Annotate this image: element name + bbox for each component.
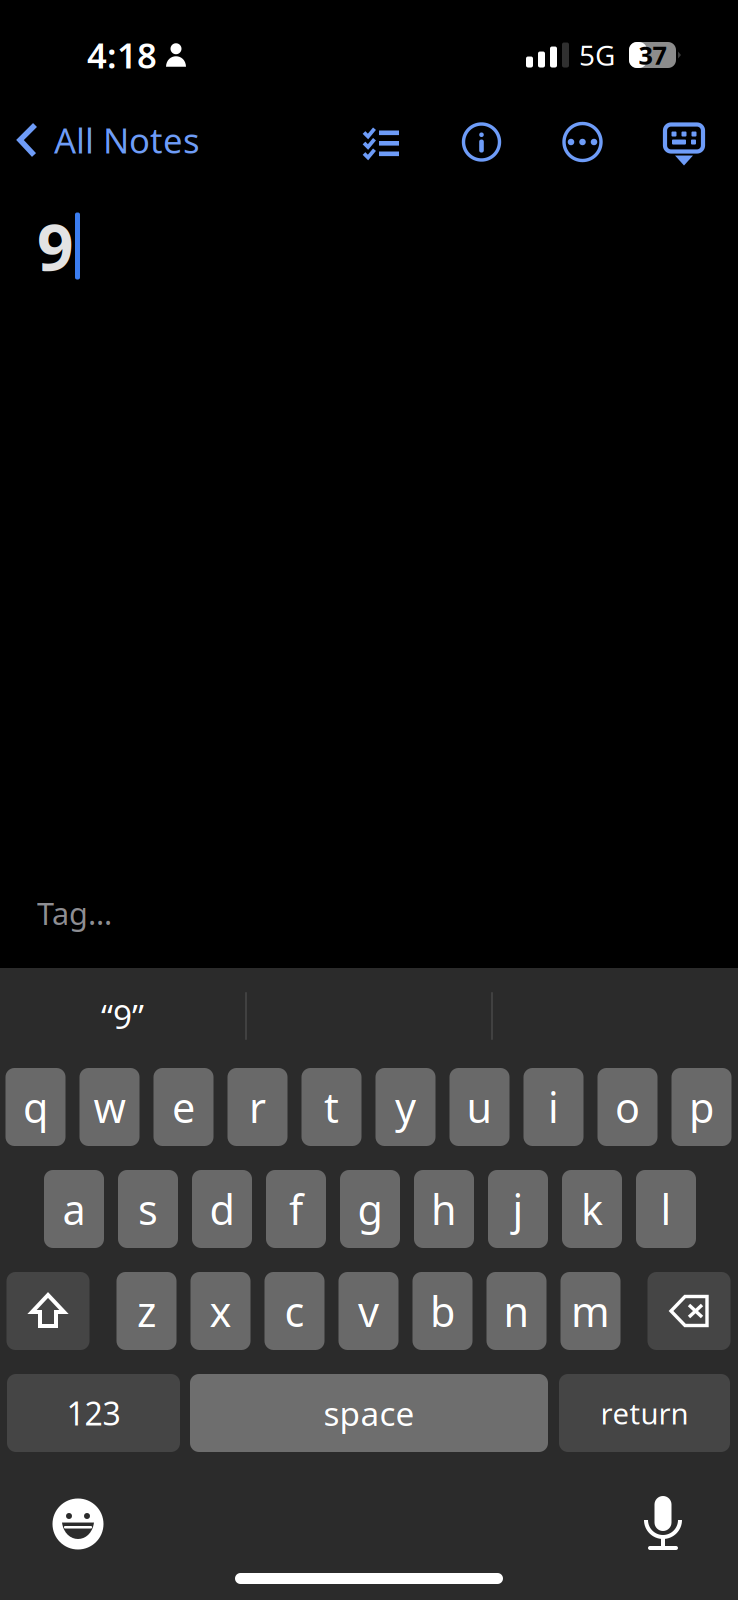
staticText: q [23, 1080, 48, 1134]
staticText: 5G [579, 36, 615, 74]
staticText: 37 [638, 38, 666, 72]
button[interactable]: a [44, 1170, 104, 1248]
staticText: space [323, 1391, 414, 1435]
button[interactable]: w [79, 1068, 139, 1146]
staticText: o [615, 1080, 640, 1134]
button[interactable]: r [227, 1068, 287, 1146]
staticText: e [172, 1080, 195, 1134]
button[interactable]: k [562, 1170, 622, 1248]
staticText: j [512, 1182, 523, 1236]
staticText: g [357, 1182, 382, 1236]
button[interactable]: u [449, 1068, 509, 1146]
button[interactable]: Delete [647, 1272, 730, 1350]
button[interactable]: o [597, 1068, 657, 1146]
button[interactable]: space [190, 1374, 548, 1452]
button[interactable]: v [338, 1272, 398, 1350]
button[interactable]: More Options [532, 111, 633, 173]
staticText: b [430, 1284, 455, 1338]
button[interactable]: return [559, 1374, 730, 1452]
staticText: d [209, 1182, 234, 1236]
staticText: a [62, 1182, 85, 1236]
staticText: i [548, 1080, 559, 1134]
staticText: n [503, 1284, 529, 1338]
button[interactable]: x [190, 1272, 250, 1350]
staticText: m [571, 1284, 610, 1338]
button[interactable]: Shift [6, 1272, 89, 1350]
button[interactable]: n [486, 1272, 546, 1350]
button[interactable]: y [375, 1068, 435, 1146]
staticText: u [466, 1080, 492, 1134]
staticText: y [395, 1080, 416, 1134]
button[interactable]: Hide Keyboard [633, 111, 735, 173]
staticText: return [600, 1393, 688, 1432]
button[interactable]: l [636, 1170, 696, 1248]
button[interactable]: m [560, 1272, 620, 1350]
staticText: h [431, 1182, 457, 1236]
staticText: “9” [101, 994, 144, 1038]
button[interactable]: g [340, 1170, 400, 1248]
staticText: Tag... [37, 893, 112, 933]
button[interactable]: “9” [0, 968, 246, 1052]
button[interactable]: e [153, 1068, 213, 1146]
button[interactable]: All Notes [0, 105, 210, 175]
button[interactable]: 123 [7, 1374, 180, 1452]
button[interactable]: p [671, 1068, 731, 1146]
staticText: 4:18 [87, 32, 157, 78]
staticText: l [660, 1182, 671, 1236]
staticText: f [289, 1182, 303, 1236]
button[interactable]: i [523, 1068, 583, 1146]
button[interactable]: j [488, 1170, 548, 1248]
button[interactable]: c [264, 1272, 324, 1350]
staticText: s [138, 1182, 158, 1236]
button[interactable]: f [266, 1170, 326, 1248]
staticText: All Notes [54, 117, 200, 163]
staticText: p [689, 1080, 714, 1134]
button[interactable]: Emoji [50, 1496, 106, 1552]
staticText: r [249, 1080, 266, 1134]
button[interactable]: b [412, 1272, 472, 1350]
button[interactable]: h [414, 1170, 474, 1248]
button[interactable]: s [118, 1170, 178, 1248]
staticText: x [209, 1284, 231, 1338]
button[interactable]: t [301, 1068, 361, 1146]
button[interactable]: d [192, 1170, 252, 1248]
staticText: z [137, 1284, 156, 1338]
staticText: k [581, 1182, 603, 1236]
staticText: c [284, 1284, 304, 1338]
button[interactable]: Note Info [431, 111, 532, 173]
button[interactable]: z [116, 1272, 176, 1350]
staticText: 9 [37, 203, 74, 288]
staticText: t [324, 1080, 339, 1134]
staticText: w [93, 1080, 125, 1134]
staticText: 123 [66, 1392, 120, 1434]
button[interactable]: q [5, 1068, 65, 1146]
button[interactable]: Checklist [331, 111, 431, 173]
button[interactable]: Dictate [644, 1496, 682, 1552]
staticText: v [358, 1284, 379, 1338]
